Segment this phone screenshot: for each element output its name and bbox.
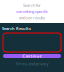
staticText: Terms and privacy (15, 61, 48, 66)
button[interactable]: Continue (3, 54, 61, 58)
staticText: and see results (19, 15, 45, 20)
staticText: something specific (16, 9, 48, 14)
staticText: Continue (22, 53, 41, 59)
staticText: Search Results (2, 26, 31, 31)
staticText: Search for (23, 2, 41, 8)
